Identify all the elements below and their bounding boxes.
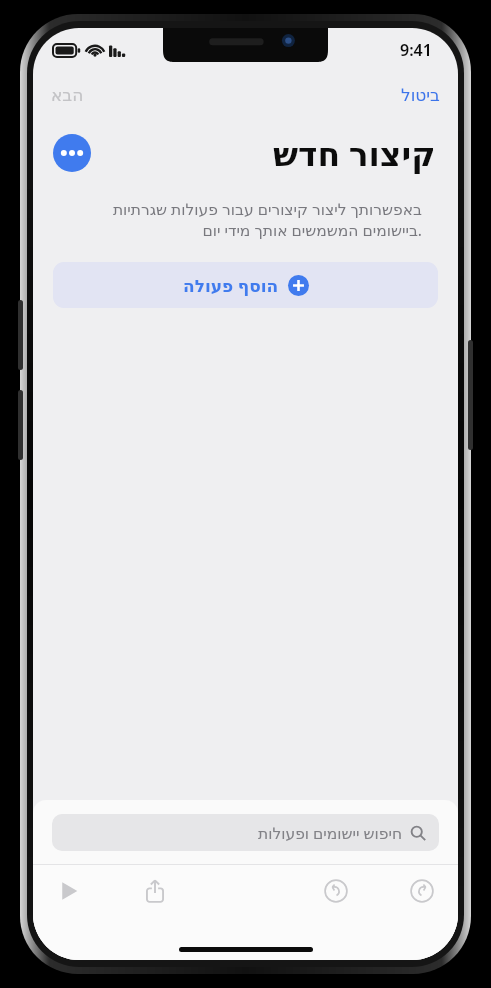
button[interactable]: חיפוש יישומים ופעולות: [52, 814, 439, 851]
staticText: קיצור חדש: [273, 131, 436, 176]
button[interactable]: הבא: [33, 77, 102, 113]
button[interactable]: Redo: [400, 869, 444, 913]
button[interactable]: הוסף פעולה: [53, 262, 438, 308]
staticText: 9:41: [400, 39, 432, 61]
button[interactable]: More options: [53, 134, 91, 172]
staticText: הוסף פעולה: [183, 274, 279, 297]
staticText: חיפוש יישומים ופעולות: [258, 822, 403, 843]
button[interactable]: Undo: [314, 869, 358, 913]
staticText: ביטול: [401, 85, 440, 105]
staticText: הבא: [51, 85, 84, 105]
button[interactable]: Share: [133, 869, 177, 913]
button[interactable]: Run shortcut: [47, 869, 91, 913]
staticText: באפשרותך ליצור קיצורים עבור פעולות שגרתי…: [69, 198, 422, 240]
button[interactable]: ביטול: [383, 77, 458, 113]
